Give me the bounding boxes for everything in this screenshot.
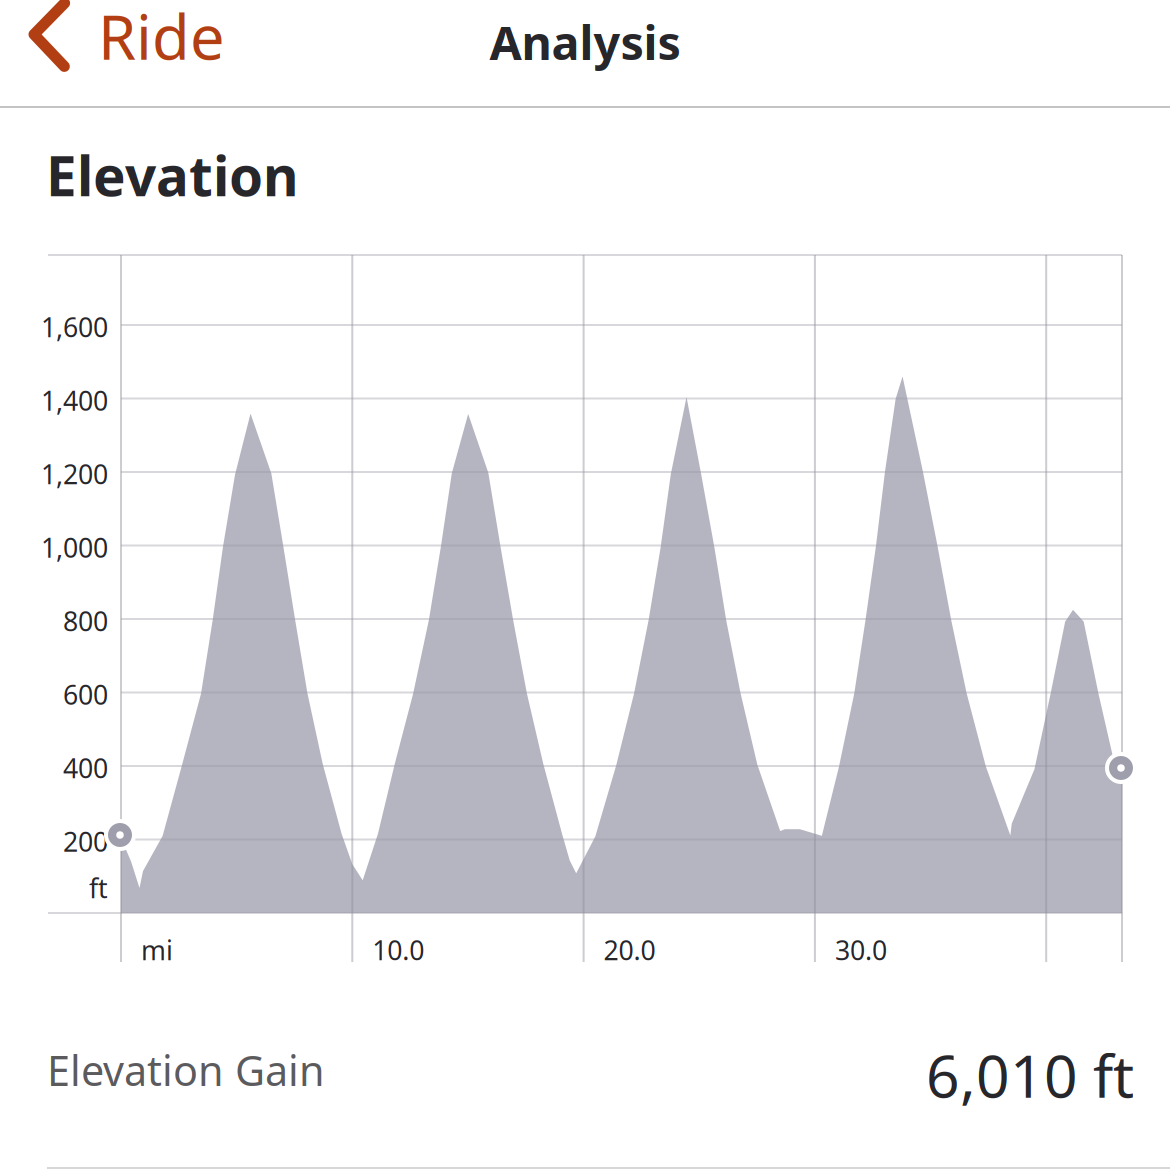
staticText: Elevation Gain — [47, 1043, 325, 1097]
staticText: 800 — [63, 603, 108, 639]
staticText: 600 — [63, 677, 108, 712]
staticText: 20.0 — [604, 932, 656, 968]
staticText: 1,000 — [41, 530, 108, 565]
staticText: 6,010 ft — [926, 1036, 1134, 1114]
staticText: 30.0 — [835, 932, 887, 968]
staticText: mi — [141, 932, 173, 968]
staticText: Analysis — [489, 11, 680, 73]
staticText: 10.0 — [372, 932, 424, 968]
button[interactable]: Ride — [0, 0, 330, 99]
staticText: 1,200 — [41, 456, 108, 492]
staticText: 1,600 — [41, 309, 108, 345]
staticText: Elevation — [46, 139, 299, 211]
staticText: 400 — [63, 750, 108, 786]
staticText: Ride — [98, 0, 225, 77]
staticText: ft — [89, 870, 108, 906]
staticText: 200 — [63, 824, 108, 859]
staticText: 1,400 — [41, 383, 108, 418]
